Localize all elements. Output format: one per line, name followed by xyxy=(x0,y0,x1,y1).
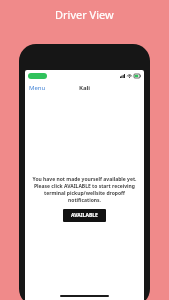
staticText: Kali xyxy=(79,84,91,92)
staticText: You have not made yourself available yet… xyxy=(30,176,139,204)
staticText: AVAILABLE xyxy=(71,212,98,219)
button[interactable]: Menu xyxy=(25,82,51,94)
button[interactable]: AVAILABLE xyxy=(63,209,106,222)
staticText: Driver View xyxy=(55,7,114,22)
staticText: Menu xyxy=(29,84,46,92)
